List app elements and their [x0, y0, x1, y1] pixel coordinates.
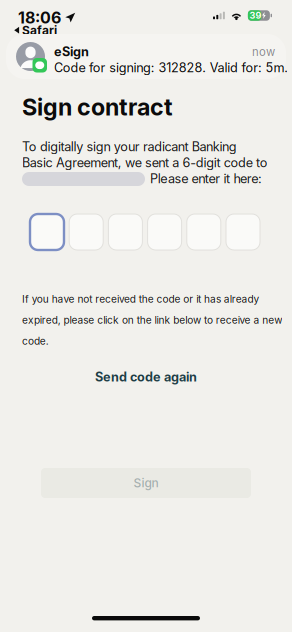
staticText: Send code again	[95, 369, 197, 385]
staticText: Code for signing: 312828. Valid for: 5m.	[54, 60, 288, 75]
staticText: code.	[22, 335, 49, 347]
staticText: now	[252, 45, 275, 59]
staticText: To digitally sign your radicant Banking	[22, 139, 237, 154]
button[interactable]: Safari	[14, 23, 57, 37]
button[interactable]: Send code again	[0, 369, 292, 385]
staticText: Basic Agreement, we sent a 6-digit code …	[22, 155, 268, 170]
staticText: Please enter it here:	[150, 171, 262, 186]
staticText: Sign	[133, 476, 158, 490]
staticText: expired, please click on the link below …	[22, 314, 282, 326]
staticText: eSign	[54, 44, 89, 59]
staticText: 18:06	[18, 8, 61, 27]
button[interactable]: eSign	[6, 34, 286, 79]
button[interactable]: Sign	[41, 468, 251, 498]
staticText: Sign contract	[22, 93, 173, 121]
staticText: If you have not received the code or it …	[22, 293, 259, 305]
staticText: Safari	[22, 23, 57, 37]
staticText: 39	[249, 10, 261, 21]
